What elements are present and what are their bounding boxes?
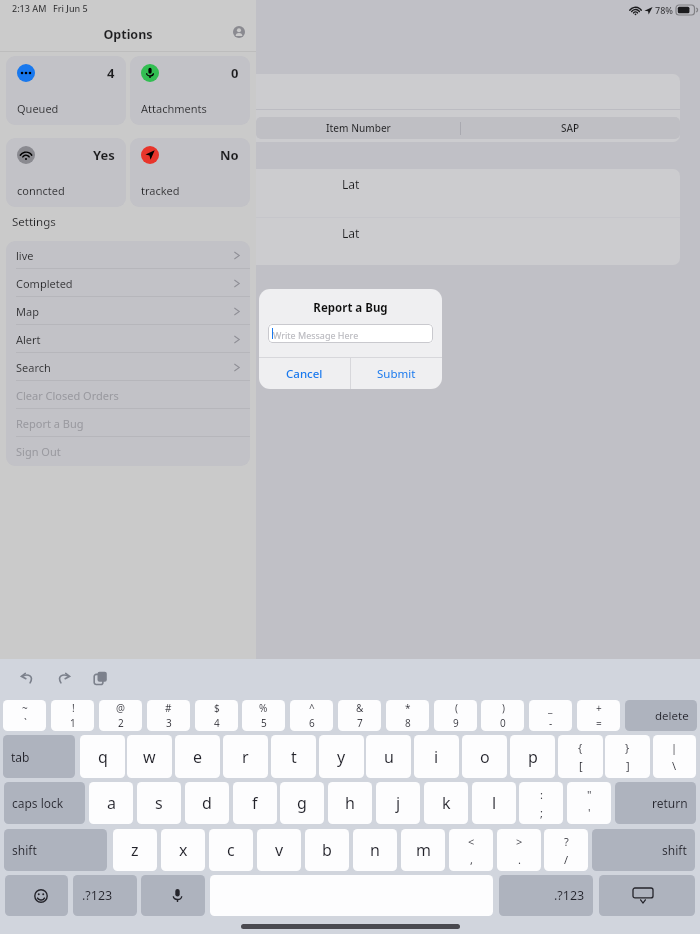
staticText: Cancel	[286, 366, 323, 382]
button[interactable]: shift	[4, 829, 107, 871]
button[interactable]: Undo	[18, 669, 36, 687]
button[interactable]: Search	[6, 353, 250, 381]
button[interactable]: z	[113, 829, 157, 871]
button[interactable]: o	[462, 735, 507, 778]
staticText: v	[275, 839, 284, 861]
staticText: conncted	[17, 183, 65, 198]
button[interactable]: !	[51, 700, 94, 731]
button[interactable]: b	[305, 829, 349, 871]
button[interactable]: (	[434, 700, 477, 731]
button[interactable]: t	[271, 735, 316, 778]
button[interactable]: v	[257, 829, 301, 871]
button[interactable]: >	[497, 829, 541, 871]
button[interactable]: 4	[6, 56, 126, 125]
button[interactable]: }	[605, 735, 650, 778]
staticText: d	[202, 792, 212, 814]
button[interactable]: caps lock	[4, 782, 85, 824]
button[interactable]: @	[99, 700, 142, 731]
button[interactable]: delete	[625, 700, 697, 731]
button[interactable]: +	[577, 700, 620, 731]
button[interactable]: x	[161, 829, 205, 871]
button[interactable]: emoji	[5, 875, 68, 916]
button[interactable]: $	[195, 700, 238, 731]
staticText: p	[528, 746, 538, 768]
button[interactable]: <	[449, 829, 493, 871]
button[interactable]: mic	[141, 875, 205, 916]
button[interactable]: "	[567, 782, 611, 824]
button[interactable]: :	[519, 782, 563, 824]
staticText: ~	[22, 701, 28, 715]
staticText: SAP	[561, 121, 580, 135]
staticText: Lat	[342, 176, 360, 192]
button[interactable]: n	[353, 829, 397, 871]
button[interactable]: p	[510, 735, 555, 778]
button[interactable]: .?123	[499, 875, 593, 916]
button[interactable]: Clear Closed Orders	[6, 381, 250, 409]
button[interactable]: Redo	[55, 669, 73, 687]
button[interactable]: w	[127, 735, 172, 778]
button[interactable]: live	[6, 241, 250, 269]
button[interactable]: Report a Bug	[6, 409, 250, 437]
button[interactable]: Cancel	[259, 358, 350, 389]
button[interactable]: Map	[6, 297, 250, 325]
staticText: Options	[0, 26, 256, 43]
button[interactable]: #	[147, 700, 190, 731]
button[interactable]: &	[338, 700, 381, 731]
button[interactable]: )	[481, 700, 524, 731]
staticText: ]	[626, 758, 630, 773]
button[interactable]: f	[233, 782, 277, 824]
button[interactable]: g	[280, 782, 324, 824]
button[interactable]: _	[529, 700, 572, 731]
button[interactable]: Yes	[6, 138, 126, 207]
staticText: +	[596, 701, 602, 715]
button[interactable]: c	[209, 829, 253, 871]
button[interactable]: kbd	[599, 875, 695, 916]
staticText: j	[396, 792, 401, 814]
button[interactable]: h	[328, 782, 372, 824]
button[interactable]: l	[472, 782, 516, 824]
button[interactable]: 0	[130, 56, 250, 125]
staticText: g	[297, 792, 307, 814]
button[interactable]: %	[242, 700, 285, 731]
button[interactable]: r	[223, 735, 268, 778]
button[interactable]: .?123	[73, 875, 137, 916]
staticText: m	[416, 839, 431, 861]
button[interactable]: y	[319, 735, 364, 778]
staticText: f	[252, 792, 258, 814]
button[interactable]: q	[80, 735, 125, 778]
staticText: >	[516, 834, 523, 849]
button[interactable]: tab	[3, 735, 75, 778]
button[interactable]: Account	[233, 26, 245, 38]
button[interactable]: *	[386, 700, 429, 731]
button[interactable]: return	[615, 782, 696, 824]
staticText: tracked	[141, 183, 180, 198]
staticText: }	[625, 740, 630, 755]
staticText: '	[588, 805, 591, 820]
staticText: 2:13 AM	[12, 2, 47, 14]
button[interactable]: |	[653, 735, 696, 778]
button[interactable]: No	[130, 138, 250, 207]
button[interactable]: k	[424, 782, 468, 824]
button[interactable]: a	[89, 782, 133, 824]
button[interactable]: Sign Out	[6, 437, 250, 466]
button[interactable]: shift	[592, 829, 695, 871]
button[interactable]: ?	[544, 829, 588, 871]
button[interactable]: i	[414, 735, 459, 778]
button[interactable]: d	[185, 782, 229, 824]
button[interactable]: {	[558, 735, 603, 778]
button[interactable]: ^	[290, 700, 333, 731]
button[interactable]: Paste	[91, 669, 109, 687]
button[interactable]: Completed	[6, 269, 250, 297]
button[interactable]: m	[401, 829, 445, 871]
button[interactable]: j	[376, 782, 420, 824]
button[interactable]: s	[137, 782, 181, 824]
staticText: =	[596, 716, 602, 730]
button[interactable]: Submit	[351, 358, 442, 389]
staticText: Alert	[16, 332, 41, 347]
button[interactable]: Alert	[6, 325, 250, 353]
button[interactable]: e	[175, 735, 220, 778]
button[interactable]: ~	[3, 700, 46, 731]
button[interactable]: u	[366, 735, 411, 778]
staticText: 3	[166, 716, 172, 730]
